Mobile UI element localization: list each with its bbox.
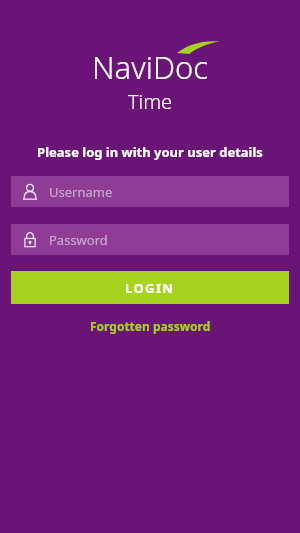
staticText: Forgotten password [90,318,211,334]
button[interactable]: LOGIN [11,271,289,304]
button[interactable]: Password [11,224,289,255]
staticText: Username [49,183,113,201]
button[interactable]: Forgotten password [82,315,219,337]
staticText: Time [128,88,173,115]
staticText: NaviDoc [92,46,209,88]
staticText: Please log in with your user details [37,143,263,161]
button[interactable]: Username [11,176,289,207]
staticText: LOGIN [125,279,175,297]
staticText: Password [49,231,108,249]
